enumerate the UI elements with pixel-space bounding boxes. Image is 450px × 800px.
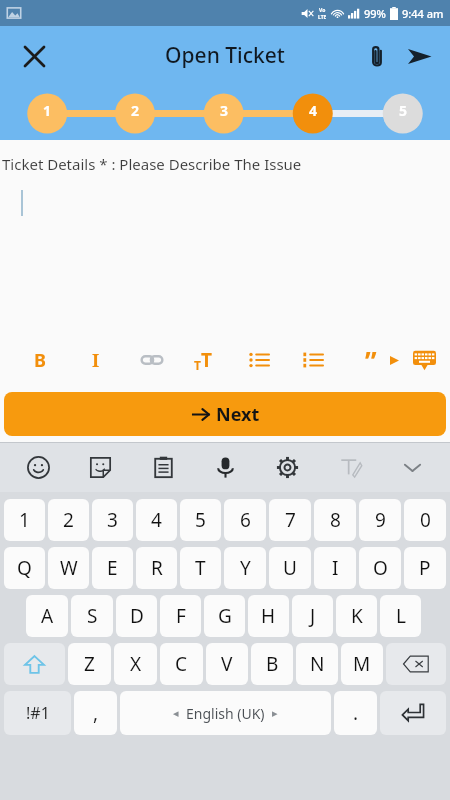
button[interactable]: .	[334, 691, 377, 735]
button[interactable]: Next	[4, 392, 446, 436]
button[interactable]: Z	[68, 643, 111, 685]
button[interactable]: V	[206, 643, 248, 685]
button[interactable]: 9	[359, 499, 401, 541]
button[interactable]: Shift	[4, 643, 65, 685]
button[interactable]: L	[380, 595, 421, 637]
button[interactable]: R	[136, 547, 177, 589]
staticText: 5	[195, 507, 206, 533]
button[interactable]: N	[296, 643, 338, 685]
button[interactable]: 7	[269, 499, 311, 541]
button[interactable]: W	[48, 547, 89, 589]
button[interactable]: Attach file	[356, 35, 398, 77]
button[interactable]: Voice input	[205, 447, 245, 487]
button[interactable]: 5	[180, 499, 221, 541]
staticText: !#1	[26, 702, 50, 724]
staticText: Ticket Details * : Please Describe The I…	[2, 154, 302, 174]
button[interactable]: 4	[136, 499, 177, 541]
staticText: W	[60, 555, 78, 581]
button[interactable]: K	[336, 595, 377, 637]
staticText: 7	[285, 507, 296, 533]
staticText: ”	[365, 343, 377, 378]
button[interactable]: I	[314, 547, 356, 589]
button[interactable]: arrow	[374, 340, 414, 380]
button[interactable]: 6	[224, 499, 266, 541]
button[interactable]: Handwriting	[330, 447, 370, 487]
staticText: English (UK)	[186, 704, 265, 723]
button[interactable]: M	[341, 643, 383, 685]
staticText: 5	[391, 101, 415, 120]
button[interactable]: I	[76, 340, 116, 380]
button[interactable]: O	[359, 547, 401, 589]
staticText: I	[332, 555, 339, 581]
staticText: E	[107, 555, 118, 581]
staticText: Open Ticket	[165, 41, 285, 70]
button[interactable]: Q	[4, 547, 45, 589]
button[interactable]: Send	[398, 35, 440, 77]
button[interactable]: link	[132, 340, 172, 380]
staticText: 9	[375, 507, 386, 533]
button[interactable]: Backspace	[386, 643, 446, 685]
staticText: T	[201, 347, 212, 373]
button[interactable]: J	[292, 595, 333, 637]
staticText: H	[261, 603, 276, 629]
button[interactable]: B	[251, 643, 293, 685]
staticText: 9:44 am	[402, 6, 444, 21]
button[interactable]: ,	[74, 691, 117, 735]
button[interactable]: !#1	[4, 691, 71, 735]
staticText: 8	[330, 507, 341, 533]
staticText: 3	[212, 101, 236, 120]
staticText: V	[221, 651, 233, 677]
button[interactable]: Space, English (UK)	[120, 691, 331, 735]
staticText: Vo	[319, 7, 326, 14]
staticText: 3	[107, 507, 118, 533]
staticText: F	[176, 603, 186, 629]
staticText: B	[266, 651, 279, 677]
staticText: 4	[151, 507, 162, 533]
button[interactable]: 2	[48, 499, 89, 541]
button[interactable]: quote	[351, 340, 391, 380]
staticText: O	[373, 555, 388, 581]
button[interactable]: H	[248, 595, 289, 637]
button[interactable]: 8	[314, 499, 356, 541]
button[interactable]: F	[160, 595, 201, 637]
button[interactable]: Collapse keyboard	[392, 447, 432, 487]
button[interactable]: U	[269, 547, 311, 589]
button[interactable]: Close	[14, 36, 54, 76]
staticText: P	[419, 555, 431, 581]
button[interactable]: D	[116, 595, 157, 637]
staticText: 4	[301, 101, 325, 120]
button[interactable]: G	[204, 595, 245, 637]
staticText: J	[310, 603, 316, 629]
button[interactable]: E	[92, 547, 133, 589]
button[interactable]: 1	[4, 499, 45, 541]
button[interactable]: C	[160, 643, 203, 685]
staticText: 1	[35, 101, 59, 120]
button[interactable]: 3	[92, 499, 133, 541]
button[interactable]: S	[71, 595, 113, 637]
staticText: ,	[93, 700, 99, 726]
button[interactable]: Enter	[380, 691, 446, 735]
staticText: A	[41, 603, 54, 629]
button[interactable]: B	[20, 340, 60, 380]
button[interactable]: Y	[224, 547, 266, 589]
button[interactable]: ul	[239, 340, 279, 380]
staticText: T	[195, 555, 206, 581]
button[interactable]: ol	[293, 340, 333, 380]
staticText: C	[175, 651, 188, 677]
button[interactable]: Emoji	[18, 447, 58, 487]
staticText: .	[353, 700, 359, 726]
button[interactable]: Settings	[267, 447, 307, 487]
staticText: Q	[17, 555, 32, 581]
button[interactable]: Clipboard	[143, 447, 183, 487]
button[interactable]: Stickers	[80, 447, 120, 487]
staticText: Next	[216, 402, 260, 427]
staticText: K	[351, 603, 363, 629]
staticText: ▸	[272, 707, 278, 720]
button[interactable]: T	[183, 340, 223, 380]
button[interactable]: kb	[404, 340, 444, 380]
button[interactable]: P	[404, 547, 446, 589]
button[interactable]: 0	[404, 499, 446, 541]
button[interactable]: T	[180, 547, 221, 589]
button[interactable]: A	[26, 595, 68, 637]
button[interactable]: X	[114, 643, 157, 685]
